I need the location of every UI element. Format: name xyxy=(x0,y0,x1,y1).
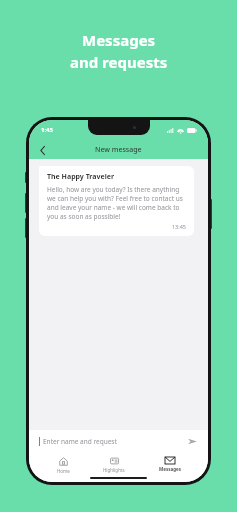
staticText: 1:45 xyxy=(41,126,53,134)
button[interactable]: Home xyxy=(51,456,76,475)
staticText: Hello, how are you today? Is there anyth… xyxy=(47,185,186,221)
staticText: Messages xyxy=(82,30,156,50)
staticText: New message xyxy=(95,145,142,155)
staticText: Home xyxy=(57,468,70,474)
staticText: and requests xyxy=(70,52,168,72)
button[interactable]: The Happy Traveler xyxy=(39,166,194,236)
staticText: 13:45 xyxy=(47,223,186,230)
button[interactable]: Back xyxy=(35,142,51,158)
button[interactable]: Send xyxy=(186,435,198,447)
staticText: The Happy Traveler xyxy=(47,172,115,182)
staticText: Messages xyxy=(159,466,181,472)
staticText: Highlights xyxy=(103,467,125,473)
button[interactable]: Highlights xyxy=(97,456,131,474)
staticText: Enter name and request xyxy=(43,437,117,446)
button[interactable]: Messages xyxy=(153,456,187,473)
button[interactable]: Enter name and request xyxy=(29,430,208,452)
